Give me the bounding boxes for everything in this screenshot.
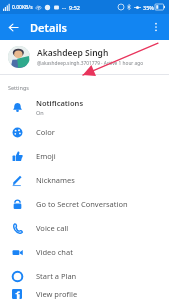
staticText: … [62,4,66,11]
staticText: 0.00KB/s [12,4,33,11]
staticText: Akashdeep Singh [37,47,109,59]
staticText: Emoji [36,151,56,161]
button[interactable]: Emoji [0,144,169,168]
staticText: Start a Plan [36,271,77,281]
button[interactable]: Nicknames [0,168,169,192]
button[interactable]: Akashdeep Singh [0,40,169,74]
staticText: Go to Secret Conversation [36,199,128,209]
staticText: Notifications [36,98,84,108]
staticText: @akashdeep.singh.3701779 · Active 1 hour… [37,60,144,67]
staticText: On [36,109,44,116]
button[interactable]: Start a Plan [0,264,169,288]
button[interactable]: Video chat [0,240,169,264]
button[interactable]: Voice call [0,216,169,240]
button[interactable]: Notifications [0,94,169,120]
staticText: 9:52 [69,4,80,11]
staticText: Details [30,20,68,35]
button[interactable]: More options [143,14,169,40]
button[interactable]: Color [0,120,169,144]
staticText: Color [36,127,55,137]
button[interactable]: Back [0,14,26,40]
staticText: View profile [36,289,78,299]
staticText: Settings [8,84,29,91]
button[interactable]: View profile [0,288,169,300]
staticText: Nicknames [36,175,75,185]
button[interactable]: Go to Secret Conversation [0,192,169,216]
staticText: Video chat [36,247,73,257]
staticText: 35% [143,4,154,11]
staticText: Voice call [36,223,69,233]
